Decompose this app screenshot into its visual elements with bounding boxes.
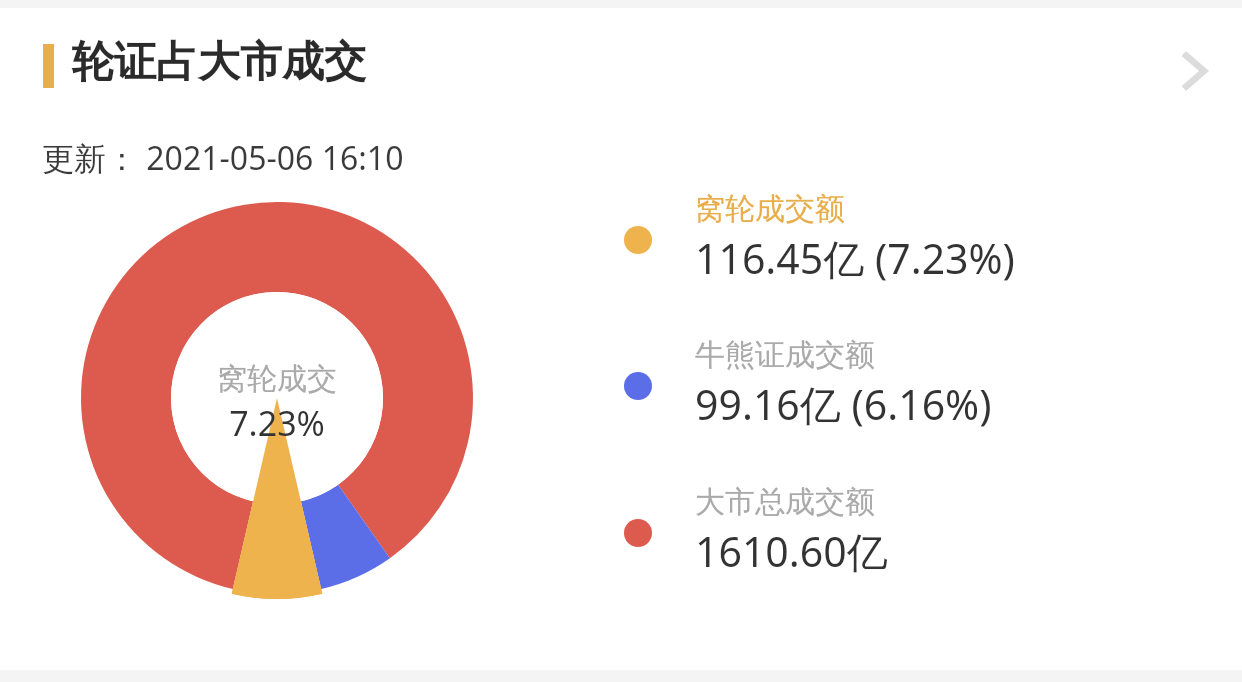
- staticText: 116.45亿 (7.23%): [695, 230, 1015, 286]
- staticText: 窝轮成交: [217, 360, 337, 398]
- staticText: 牛熊证成交额: [695, 336, 875, 374]
- staticText: 窝轮成交额: [695, 190, 845, 228]
- button[interactable]: More details: [1150, 28, 1236, 114]
- button[interactable]: 窝轮成交额: [600, 190, 1160, 310]
- staticText: 99.16亿 (6.16%): [695, 376, 992, 432]
- staticText: 7.23%: [229, 400, 325, 446]
- button[interactable]: 牛熊证成交额: [600, 336, 1160, 456]
- button[interactable]: 大市总成交额: [600, 483, 1160, 603]
- staticText: 大市总成交额: [695, 483, 875, 521]
- button[interactable]: 轮证占大市成交: [0, 8, 1242, 120]
- staticText: 1610.60亿: [695, 523, 888, 579]
- staticText: 轮证占大市成交: [72, 36, 366, 89]
- staticText: 更新： 2021-05-06 16:10: [42, 136, 404, 180]
